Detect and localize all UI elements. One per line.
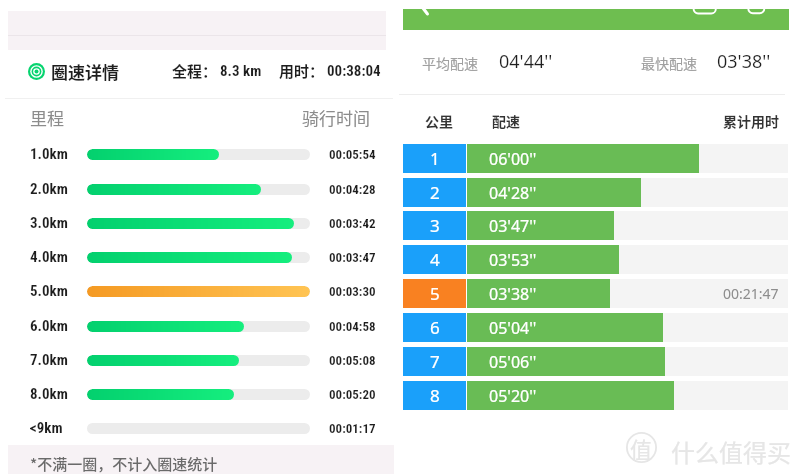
staticText: <9km: [30, 419, 63, 437]
button[interactable]: 4.0km: [0, 245, 394, 269]
staticText: 4: [430, 248, 440, 271]
staticText: 配速: [492, 111, 520, 131]
staticText: 00:38:04: [327, 62, 381, 80]
staticText: 里程: [30, 105, 64, 130]
staticText: 00:21:47: [723, 284, 779, 303]
button[interactable]: 6.0km: [0, 314, 394, 338]
staticText: *不满一圈，不计入圈速统计: [30, 453, 218, 474]
staticText: 00:05:08: [329, 353, 376, 368]
staticText: 05'04'': [489, 317, 537, 339]
staticText: 1: [430, 147, 440, 170]
staticText: 8: [430, 384, 440, 407]
button[interactable]: 5.0km: [0, 279, 394, 303]
staticText: 用时：: [279, 60, 325, 82]
staticText: 03'38'': [489, 283, 537, 305]
staticText: 最快配速: [641, 53, 697, 73]
button[interactable]: 1.0km: [0, 142, 394, 166]
staticText: 圈速详情: [51, 59, 119, 84]
button[interactable]: 1: [403, 144, 788, 173]
button[interactable]: 2: [403, 178, 788, 207]
button[interactable]: 8.0km: [0, 382, 394, 406]
button[interactable]: 圈速详情: [0, 56, 394, 86]
staticText: 03'47'': [489, 215, 537, 237]
button[interactable]: 3.0km: [0, 211, 394, 235]
staticText: 00:01:17: [329, 421, 376, 436]
staticText: 00:03:47: [329, 250, 376, 265]
staticText: 04'28'': [489, 182, 537, 204]
staticText: 2: [430, 181, 440, 204]
staticText: 6.0km: [30, 317, 68, 335]
staticText: 03'53'': [489, 249, 537, 271]
staticText: 04'44'': [499, 49, 553, 74]
button[interactable]: 4: [403, 245, 788, 274]
staticText: 05'06'': [489, 351, 537, 373]
staticText: 什么值得买: [671, 434, 791, 469]
button[interactable]: Back: [411, 0, 441, 28]
button[interactable]: 5: [403, 279, 788, 308]
staticText: 8.3 km: [220, 62, 262, 80]
button[interactable]: More: [742, 0, 774, 28]
button[interactable]: 8: [403, 381, 788, 410]
staticText: 平均配速: [422, 53, 478, 73]
staticText: 5.0km: [30, 282, 68, 300]
staticText: 3: [430, 214, 440, 237]
staticText: 00:03:30: [329, 284, 376, 299]
staticText: 06'00'': [489, 148, 537, 170]
staticText: 6: [430, 316, 440, 339]
staticText: 05'20'': [489, 385, 537, 407]
staticText: 00:04:58: [329, 319, 376, 334]
button[interactable]: Camera: [689, 0, 721, 28]
staticText: 00:04:28: [329, 182, 376, 197]
button[interactable]: 2.0km: [0, 177, 394, 201]
staticText: 公里: [425, 111, 453, 131]
staticText: 7.0km: [30, 351, 68, 369]
staticText: 5: [430, 282, 440, 305]
staticText: 骑行时间: [302, 105, 370, 130]
staticText: 4.0km: [30, 248, 68, 266]
staticText: 2.0km: [30, 180, 68, 198]
staticText: 1.0km: [30, 145, 68, 163]
staticText: 7: [430, 350, 440, 373]
button[interactable]: 7.0km: [0, 348, 394, 372]
staticText: 03'38'': [717, 49, 771, 74]
staticText: 00:05:20: [329, 387, 376, 402]
staticText: 3.0km: [30, 214, 68, 232]
button[interactable]: 6: [403, 313, 788, 342]
button[interactable]: 3: [403, 211, 788, 240]
button[interactable]: <9km: [0, 416, 394, 440]
staticText: 8.0km: [30, 385, 68, 403]
staticText: 全程：: [172, 60, 218, 82]
staticText: 值: [630, 432, 653, 463]
staticText: 00:03:42: [329, 216, 376, 231]
button[interactable]: 7: [403, 347, 788, 376]
staticText: 00:05:54: [329, 147, 376, 162]
staticText: 累计用时: [723, 111, 779, 131]
